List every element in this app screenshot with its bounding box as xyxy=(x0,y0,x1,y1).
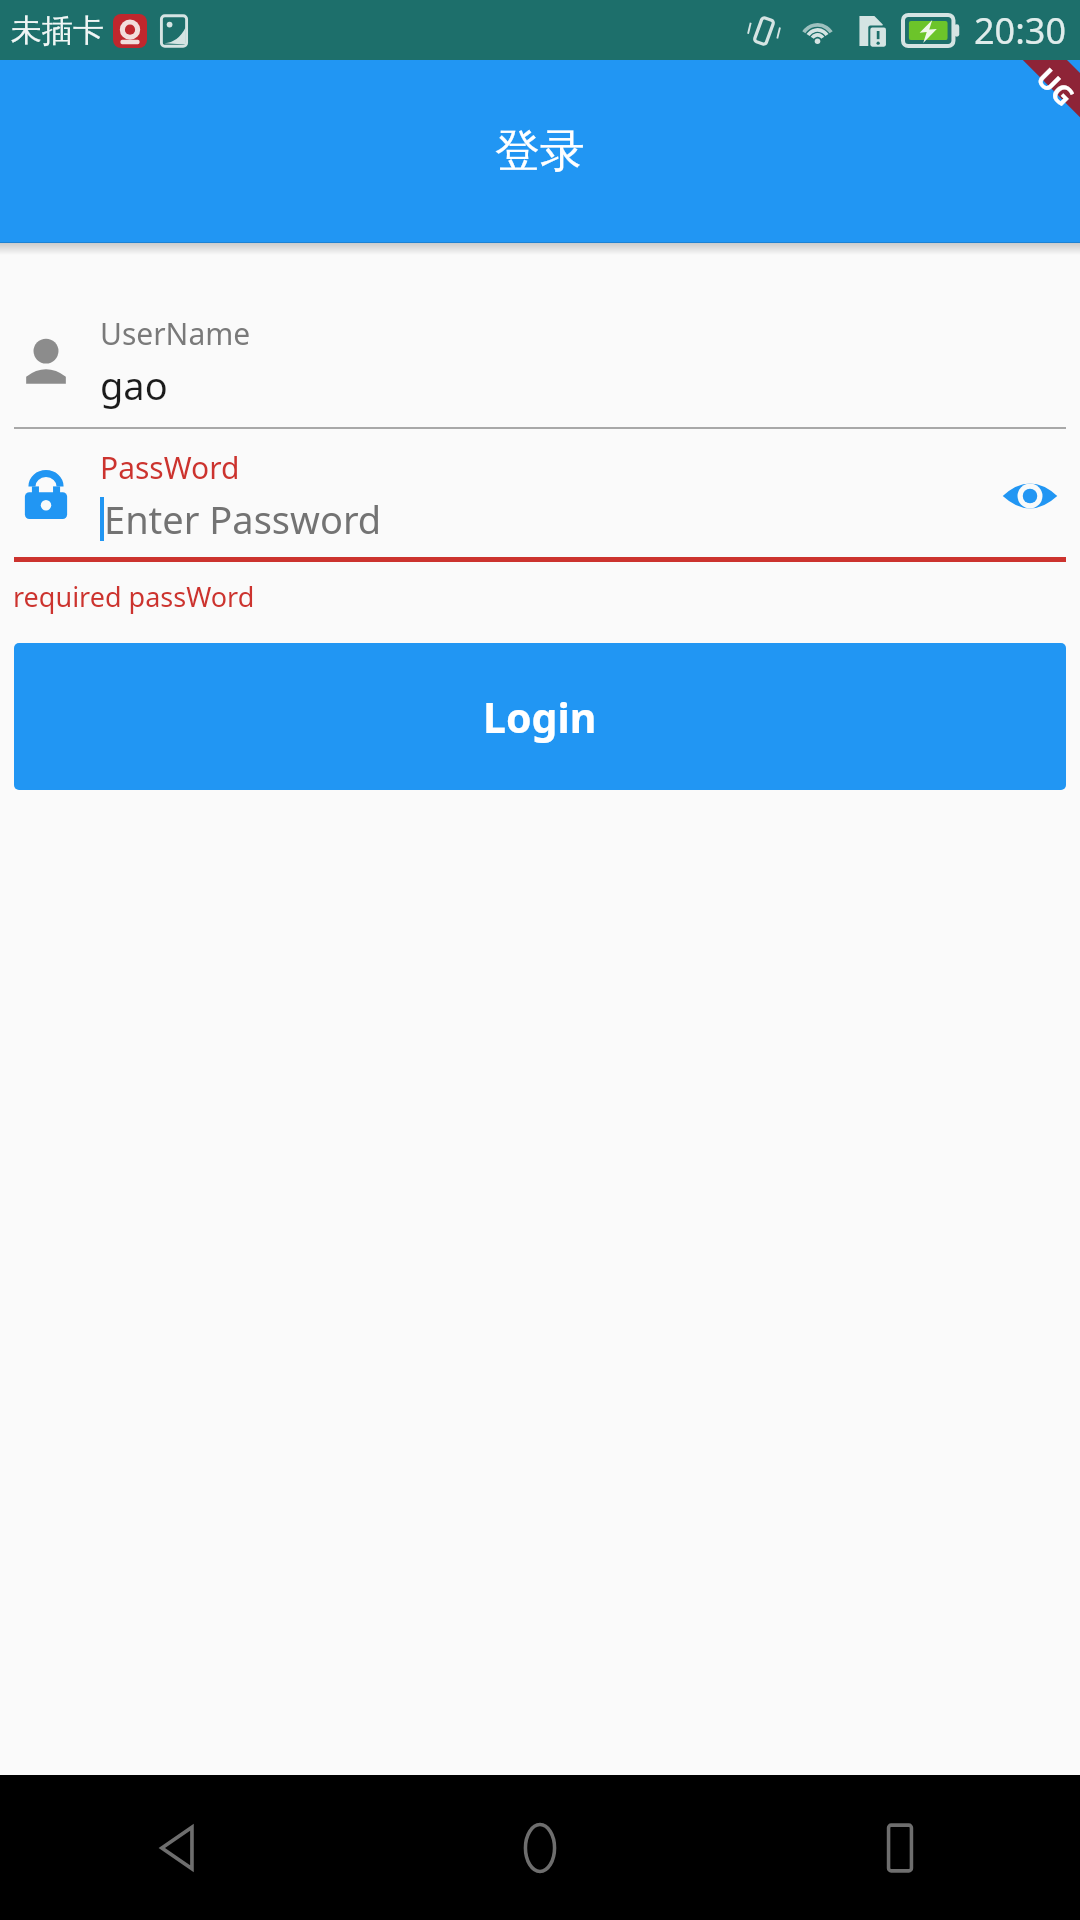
button[interactable]: Back xyxy=(0,1775,360,1920)
staticText: required passWord xyxy=(13,578,255,615)
button[interactable]: Home xyxy=(360,1775,720,1920)
staticText: UserName xyxy=(100,313,251,354)
staticText: PassWord xyxy=(100,447,240,488)
button[interactable]: Recents xyxy=(720,1775,1080,1920)
staticText: Login xyxy=(483,689,597,745)
staticText: 登录 xyxy=(495,123,585,180)
button[interactable]: Show password xyxy=(994,460,1066,532)
staticText: 20:30 xyxy=(974,6,1067,55)
staticText: Enter Password xyxy=(104,493,382,545)
staticText: UG xyxy=(1029,60,1080,114)
button[interactable]: UserName xyxy=(0,313,1080,429)
staticText: 未插卡 xyxy=(11,11,104,50)
button[interactable]: Login xyxy=(14,643,1066,790)
button[interactable]: PassWord xyxy=(0,447,1080,562)
staticText: gao xyxy=(100,359,168,411)
